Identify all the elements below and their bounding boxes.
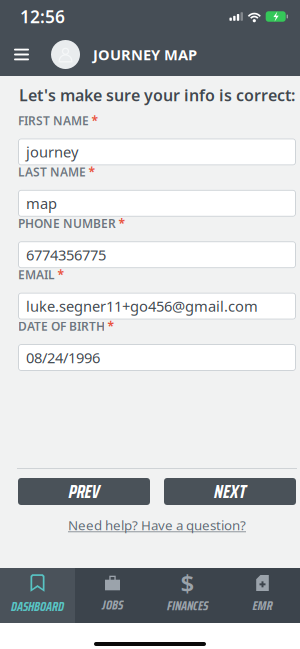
button[interactable]: map [18,190,296,217]
staticText: PHONE NUMBER [18,215,116,231]
button[interactable]: PREV [18,478,150,505]
staticText: * [57,267,64,283]
staticText: Need help? Have a question? [68,516,246,534]
staticText: map [26,194,57,213]
button[interactable]: EMR [225,568,300,623]
staticText: JOURNEY MAP [93,45,197,64]
button[interactable]: luke.segner11+go456@gmail.com [18,293,296,320]
button[interactable]: 08/24/1996 [18,344,296,371]
staticText: luke.segner11+go456@gmail.com [26,296,258,316]
staticText: JOBS [102,594,123,615]
staticText: FIRST NAME [18,112,89,128]
staticText: * [88,164,95,180]
staticText: DASHBOARD [11,596,64,617]
staticText: journey [26,142,78,162]
staticText: Let's make sure your info is correct: [19,84,295,106]
staticText: * [91,112,98,128]
button[interactable]: Profile [51,40,80,69]
staticText: $ [180,567,194,599]
staticText: 6774356775 [26,245,106,264]
staticText: LAST NAME [18,164,86,180]
staticText: DATE OF BIRTH [18,318,105,334]
button[interactable]: journey [18,138,296,165]
button[interactable]: $ [150,568,225,623]
staticText: NEXT [214,477,246,506]
staticText: EMR [252,595,272,616]
button[interactable]: JOBS [75,568,150,623]
staticText: FINANCES [167,595,208,616]
staticText: PREV [68,477,99,506]
staticText: * [107,318,114,334]
staticText: 12:56 [20,5,65,28]
button[interactable]: Need help? Have a question? [68,505,246,532]
staticText: EMAIL [18,267,55,283]
button[interactable]: NEXT [164,478,296,505]
button[interactable]: 6774356775 [18,241,296,268]
staticText: 08/24/1996 [26,348,100,367]
button[interactable]: DASHBOARD [0,568,75,623]
staticText: * [118,215,125,231]
button[interactable]: Menu [6,37,37,72]
